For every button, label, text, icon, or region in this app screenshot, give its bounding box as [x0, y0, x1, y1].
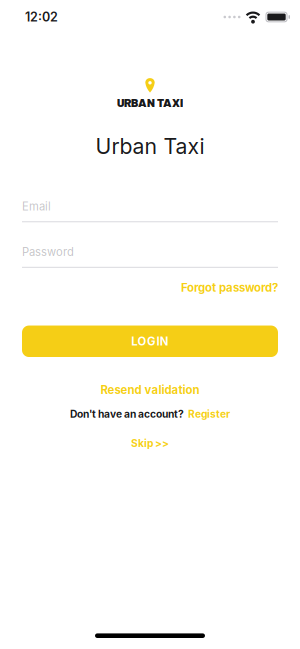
staticText: Forgot password? [181, 281, 278, 294]
staticText: Skip >> [131, 437, 169, 450]
button[interactable]: Password [22, 245, 278, 268]
staticText: 12:02 [25, 9, 58, 25]
staticText: URBAN TAXI [117, 95, 183, 109]
button[interactable]: Register [188, 408, 230, 420]
staticText: Resend validation [100, 383, 199, 397]
staticText: Don't have an account? [70, 408, 184, 420]
button[interactable]: Email [22, 200, 278, 222]
button[interactable]: Resend validation [100, 383, 199, 397]
staticText: Email [22, 200, 51, 213]
staticText: Register [188, 408, 230, 420]
button[interactable]: Forgot password? [181, 281, 278, 294]
staticText: Urban Taxi [95, 133, 204, 159]
button[interactable]: Skip >> [131, 437, 169, 450]
button[interactable]: LOGIN [22, 325, 278, 357]
staticText: Password [22, 245, 74, 259]
staticText: LOGIN [131, 334, 169, 348]
